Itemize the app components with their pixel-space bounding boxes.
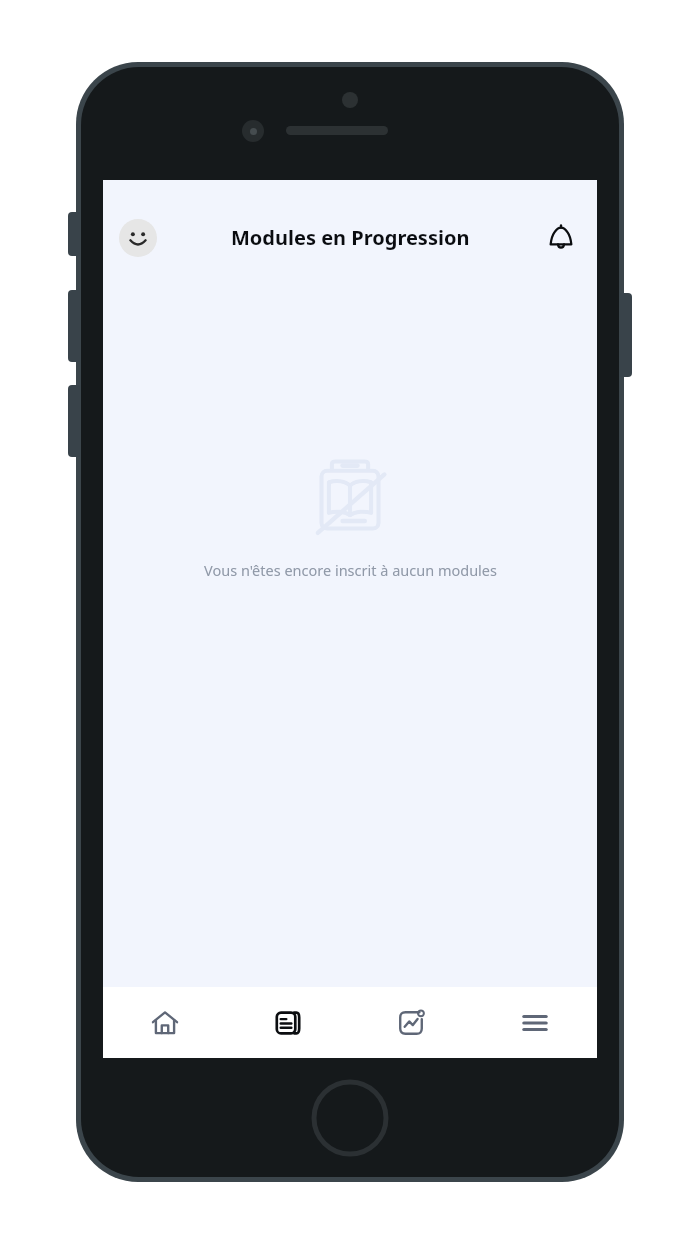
button[interactable]: Menu [473,987,597,1058]
button[interactable]: Profil [119,219,157,257]
button[interactable]: Accueil [103,987,226,1058]
staticText: Vous n'êtes encore inscrit à aucun modul… [204,560,497,580]
button[interactable]: Modules [226,987,349,1058]
staticText: Modules en Progression [231,224,470,251]
button[interactable]: Notifications [541,218,581,258]
button[interactable]: Progression [349,987,473,1058]
